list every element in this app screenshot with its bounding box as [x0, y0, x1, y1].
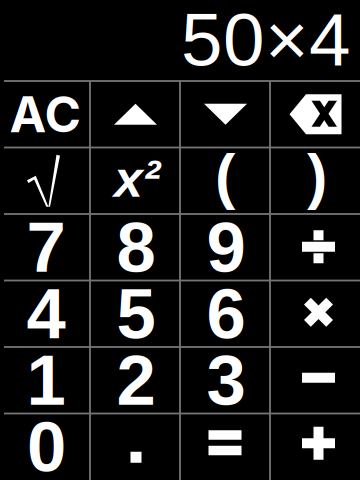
button[interactable]: 2: [90, 347, 180, 413]
staticText: (: [215, 141, 235, 210]
staticText: 2: [116, 341, 155, 420]
staticText: 9: [206, 208, 245, 287]
staticText: x²: [114, 150, 160, 208]
staticText: 5: [116, 274, 155, 353]
button[interactable]: Delete: [270, 81, 360, 147]
button[interactable]: 0: [0, 413, 90, 480]
button[interactable]: 3: [180, 347, 270, 413]
button[interactable]: 1: [0, 347, 90, 413]
button[interactable]: Decimal point: [90, 413, 180, 480]
button[interactable]: Plus: [270, 413, 360, 480]
button[interactable]: 4: [0, 280, 90, 347]
button[interactable]: 7: [0, 214, 90, 280]
staticText: 4: [26, 274, 65, 353]
button[interactable]: Scroll down: [180, 81, 270, 147]
button[interactable]: 5: [90, 280, 180, 347]
button[interactable]: Close parenthesis: [270, 147, 360, 214]
button[interactable]: Multiply: [270, 280, 360, 347]
staticText: 0: [27, 407, 66, 480]
button[interactable]: Open parenthesis: [180, 147, 270, 214]
button[interactable]: Square root: [0, 147, 90, 214]
button[interactable]: All clear: [0, 81, 90, 147]
button[interactable]: Scroll up: [90, 81, 180, 147]
staticText: ): [307, 141, 327, 210]
staticText: 7: [26, 208, 65, 287]
staticText: AC: [9, 84, 80, 144]
button[interactable]: Divide: [270, 214, 360, 280]
button[interactable]: Equals: [180, 413, 270, 480]
staticText: 3: [206, 341, 245, 420]
staticText: 6: [206, 274, 245, 353]
staticText: 8: [116, 208, 155, 287]
button[interactable]: 9: [180, 214, 270, 280]
button[interactable]: x squared: [90, 147, 180, 214]
button[interactable]: 8: [90, 214, 180, 280]
button[interactable]: Minus: [270, 347, 360, 413]
staticText: 1: [26, 341, 65, 420]
button[interactable]: 6: [180, 280, 270, 347]
staticText: 50×4: [181, 0, 351, 81]
